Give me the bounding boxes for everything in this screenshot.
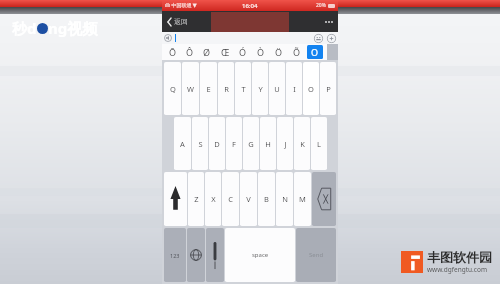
staticText: Ö [275, 46, 283, 58]
staticText: 丰图软件园 [427, 249, 492, 265]
button[interactable]: Shift [164, 172, 187, 226]
button[interactable]: O [307, 45, 323, 59]
staticText: 20% [316, 2, 326, 9]
button[interactable]: K [294, 117, 310, 170]
staticText: Ò [257, 46, 265, 58]
button[interactable]: Backspace [312, 172, 336, 226]
staticText: ıllı 中国联通 ▼ [165, 2, 197, 9]
button[interactable]: Dictation [206, 228, 224, 282]
staticText: W [187, 84, 194, 94]
staticText: Ō [169, 46, 177, 58]
button[interactable]: Ō [164, 44, 181, 60]
button[interactable]: H [260, 117, 276, 170]
button[interactable]: Y [252, 62, 268, 115]
staticText: www.dgfengtu.com [427, 265, 487, 274]
button[interactable]: Ø [198, 44, 216, 60]
staticText: Send [309, 251, 324, 259]
button[interactable]: U [269, 62, 285, 115]
staticText: ng视频 [48, 18, 98, 38]
staticText: Ø [203, 46, 211, 58]
button[interactable]: F [226, 117, 242, 170]
staticText: T [241, 84, 246, 94]
button[interactable]: N [276, 172, 293, 226]
staticText: L [317, 139, 321, 149]
staticText: Q [170, 84, 176, 94]
staticText: E [206, 84, 211, 94]
button[interactable]: Switch keyboard [187, 228, 205, 282]
button[interactable]: T [235, 62, 251, 115]
button[interactable]: Voice [164, 34, 172, 42]
staticText: X [211, 194, 216, 204]
button[interactable]: L [311, 117, 327, 170]
staticText: space [252, 251, 269, 259]
button[interactable]: I [286, 62, 302, 115]
staticText: U [274, 84, 280, 94]
staticText: Õ [293, 46, 301, 58]
button[interactable]: J [277, 117, 293, 170]
button[interactable]: C [222, 172, 239, 226]
button[interactable]: 123 [164, 228, 186, 282]
button[interactable]: Add [327, 34, 336, 43]
staticText: P [326, 84, 331, 94]
staticText: Ô [186, 46, 194, 58]
button[interactable]: Ó [234, 44, 252, 60]
button[interactable]: M [294, 172, 311, 226]
button[interactable]: D [209, 117, 225, 170]
staticText: N [282, 194, 288, 204]
staticText: M [299, 194, 306, 204]
staticText: I [293, 84, 296, 94]
staticText: S [198, 139, 203, 149]
staticText: Œ [221, 46, 230, 58]
button[interactable]: Ö [270, 44, 288, 60]
staticText: O [311, 46, 319, 58]
button[interactable]: V [240, 172, 257, 226]
button[interactable]: A [174, 117, 191, 170]
staticText: 123 [170, 252, 180, 259]
staticText: J [284, 139, 287, 149]
staticText: F [232, 139, 236, 149]
button[interactable]: Œ [216, 44, 234, 60]
button[interactable]: X [205, 172, 221, 226]
button[interactable]: O [303, 62, 319, 115]
staticText: D [214, 139, 220, 149]
button[interactable]: Õ [288, 44, 306, 60]
staticText: B [264, 194, 269, 204]
button[interactable]: Ô [181, 44, 198, 60]
staticText: Y [258, 84, 263, 94]
button[interactable]: Ò [252, 44, 270, 60]
staticText: Z [194, 194, 199, 204]
button[interactable]: B [258, 172, 275, 226]
staticText: K [300, 139, 305, 149]
staticText: G [248, 139, 254, 149]
button[interactable]: P [320, 62, 336, 115]
staticText: R [224, 84, 229, 94]
staticText: 16:04 [242, 2, 258, 10]
staticText: C [228, 194, 233, 204]
button[interactable]: R [218, 62, 234, 115]
staticText: 返回 [174, 17, 188, 26]
button[interactable]: Q [164, 62, 181, 115]
button[interactable]: Emoji [314, 34, 323, 43]
button[interactable]: 返回 [162, 14, 193, 29]
button[interactable]: W [182, 62, 199, 115]
staticText: 秒d [12, 18, 37, 38]
staticText: Ó [239, 46, 247, 58]
staticText: H [265, 139, 271, 149]
button[interactable]: More options [320, 15, 338, 29]
button[interactable]: Z [188, 172, 204, 226]
button[interactable]: S [192, 117, 208, 170]
staticText: O [308, 84, 314, 94]
button[interactable]: E [200, 62, 217, 115]
button[interactable]: space [225, 228, 295, 282]
button[interactable]: G [243, 117, 259, 170]
staticText: V [246, 194, 251, 204]
staticText: A [180, 139, 185, 149]
